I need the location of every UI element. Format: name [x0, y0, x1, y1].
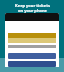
button[interactable]	[8, 61, 56, 67]
button[interactable]	[8, 53, 56, 59]
staticText: Keep your tickets on your phone	[15, 3, 50, 13]
